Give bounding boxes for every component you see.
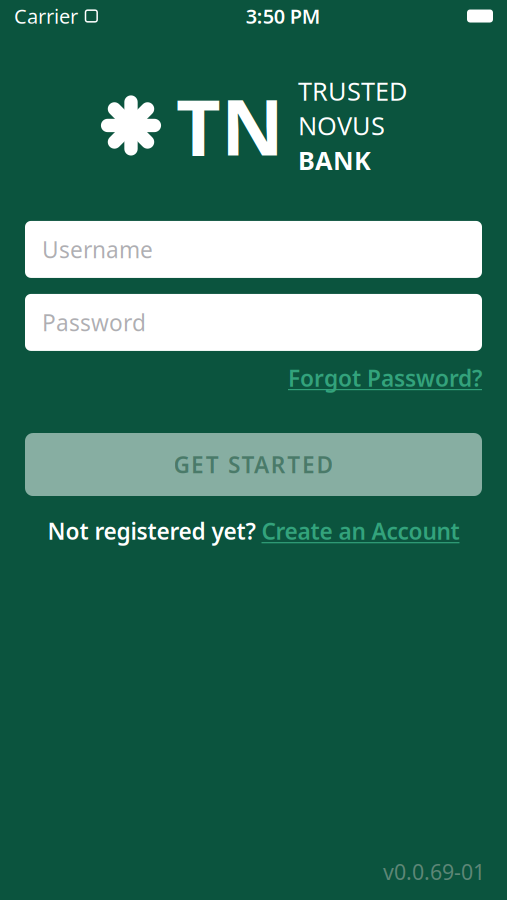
button[interactable]: Forgot Password?: [288, 363, 482, 393]
staticText: Forgot Password?: [288, 363, 482, 393]
staticText: Not registered yet?: [47, 516, 255, 546]
staticText: 3:50 PM: [246, 3, 321, 29]
staticText: Password: [42, 307, 146, 337]
staticText: GET STARTED: [173, 449, 333, 480]
staticText: BANK: [298, 143, 371, 177]
staticText: NOVUS: [298, 109, 385, 142]
staticText: TN: [176, 74, 284, 177]
button[interactable]: Create an Account: [261, 516, 459, 546]
staticText: Username: [42, 234, 153, 264]
button[interactable]: GET STARTED: [25, 433, 482, 496]
staticText: Carrier: [14, 3, 78, 29]
staticText: v0.0.69-01: [383, 858, 485, 886]
staticText: Create an Account: [261, 516, 459, 546]
staticText: TRUSTED: [298, 74, 407, 108]
